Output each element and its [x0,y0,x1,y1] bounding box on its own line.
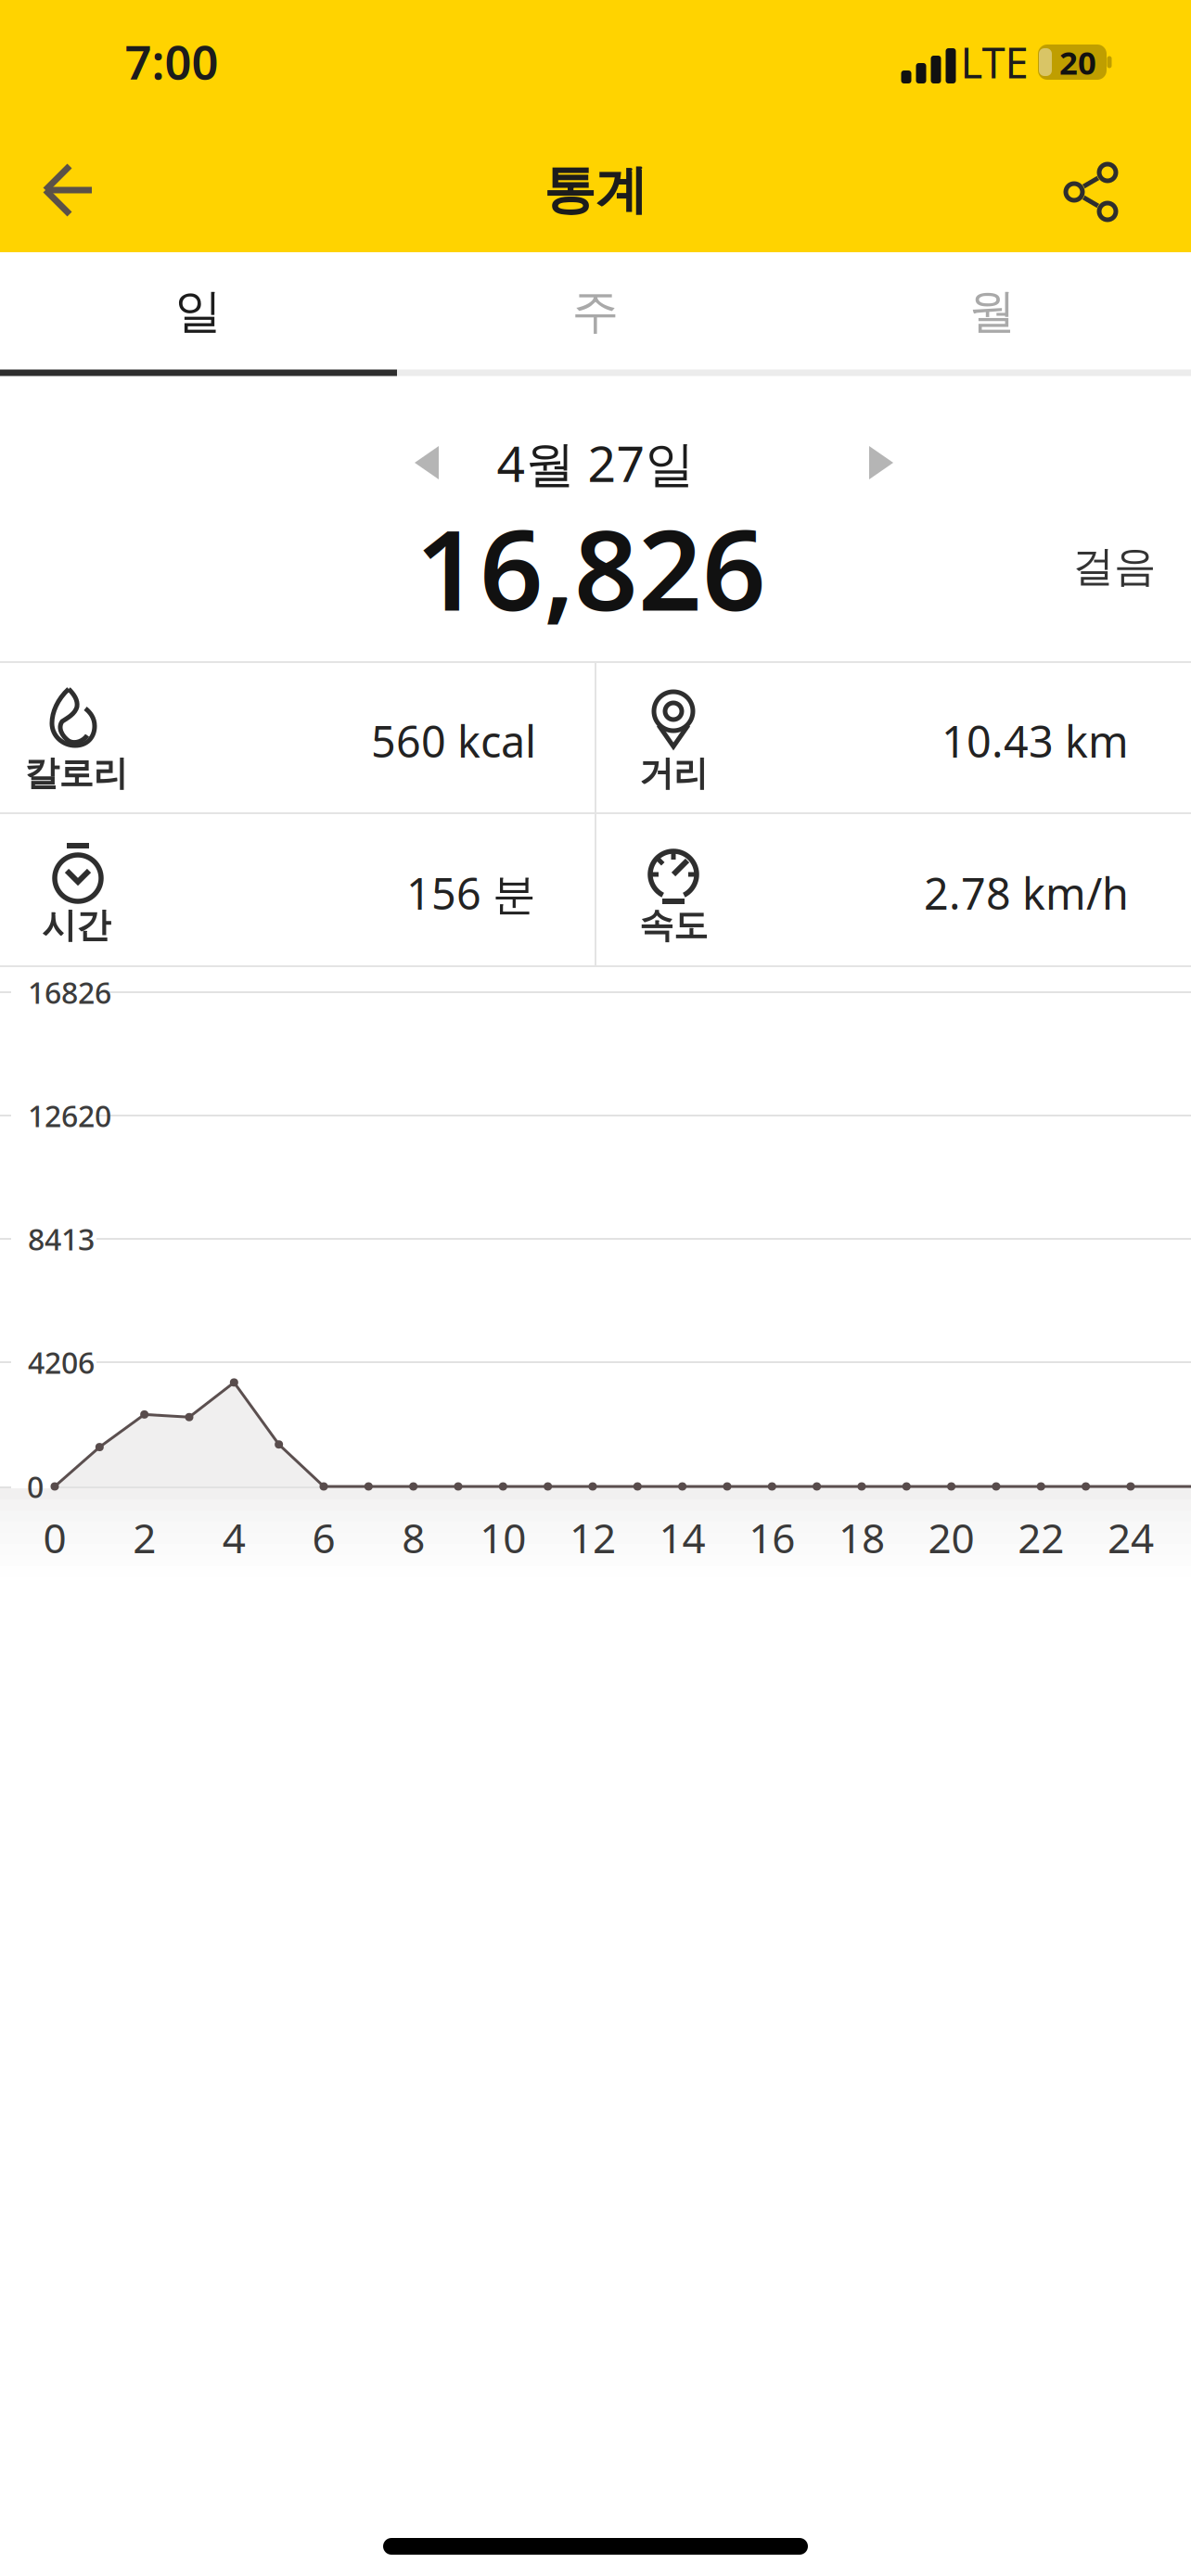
staticText: 22 [1018,1510,1064,1565]
button[interactable]: Share [1044,146,1137,238]
button[interactable]: Back [27,148,110,232]
staticText: 4206 [28,1343,95,1382]
staticText: 2.78 km/h [924,864,1129,922]
staticText: LTE [960,34,1028,90]
staticText: 2 [133,1510,156,1565]
staticText: 7:00 [125,30,218,92]
staticText: 10 [480,1510,526,1565]
staticText: 8413 [28,1219,95,1259]
staticText: 걸음 [1072,541,1156,592]
staticText: 20 [928,1510,975,1565]
button[interactable]: Previous day [394,430,459,495]
staticText: 0 [43,1510,66,1565]
staticText: 16826 [28,973,111,1012]
staticText: 거리 [639,752,708,795]
button[interactable]: Next day [849,430,914,495]
staticText: 시간 [42,904,110,947]
staticText: 10.43 km [941,712,1129,770]
staticText: 0 [27,1467,44,1506]
staticText: 통계 [544,158,647,222]
staticText: 주 [572,283,619,340]
staticText: 156 분 [406,864,536,922]
staticText: 월 [969,283,1016,340]
staticText: 속도 [639,904,708,947]
button[interactable]: 주 [397,253,794,370]
staticText: 6 [312,1510,335,1565]
staticText: 16,826 [416,494,766,641]
staticText: 4월 27일 [497,430,694,496]
staticText: 12620 [28,1096,111,1135]
staticText: 24 [1107,1510,1154,1565]
staticText: 14 [659,1510,706,1565]
button[interactable]: 일 [0,253,397,370]
staticText: 560 kcal [371,712,536,770]
staticText: 4 [222,1510,246,1565]
button[interactable]: 월 [794,253,1191,370]
staticText: 일 [175,283,222,340]
staticText: 16 [749,1510,795,1565]
staticText: 18 [838,1510,885,1565]
staticText: 8 [402,1510,425,1565]
staticText: 칼로리 [25,752,128,795]
staticText: 20 [1059,41,1096,83]
staticText: 12 [570,1510,616,1565]
